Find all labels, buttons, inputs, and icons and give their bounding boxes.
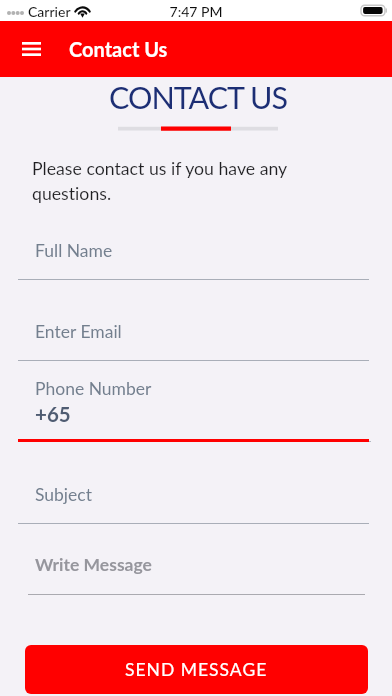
- staticText: Phone Number: [35, 378, 152, 399]
- button[interactable]: SEND MESSAGE: [25, 645, 368, 694]
- staticText: CONTACT US: [2, 79, 392, 116]
- other: Wi-Fi: [74, 4, 91, 17]
- staticText: Contact Us: [69, 37, 168, 61]
- staticText: Subject: [35, 484, 92, 505]
- staticText: Enter Email: [35, 321, 122, 342]
- button[interactable]: Open navigation menu: [11, 29, 51, 69]
- staticText: Please contact us if you have any questi…: [32, 158, 288, 204]
- staticText: Full Name: [35, 240, 113, 261]
- button[interactable]: [18, 299, 369, 359]
- staticText: +65: [35, 402, 71, 427]
- staticText: SEND MESSAGE: [125, 659, 268, 680]
- button[interactable]: [18, 364, 369, 434]
- staticText: Carrier: [28, 3, 71, 20]
- button[interactable]: [18, 218, 369, 278]
- staticText: 7:47 PM: [0, 3, 392, 20]
- button[interactable]: [18, 462, 369, 522]
- staticText: Write Message: [35, 554, 152, 575]
- other: Battery full: [360, 4, 387, 17]
- button[interactable]: [28, 532, 365, 592]
